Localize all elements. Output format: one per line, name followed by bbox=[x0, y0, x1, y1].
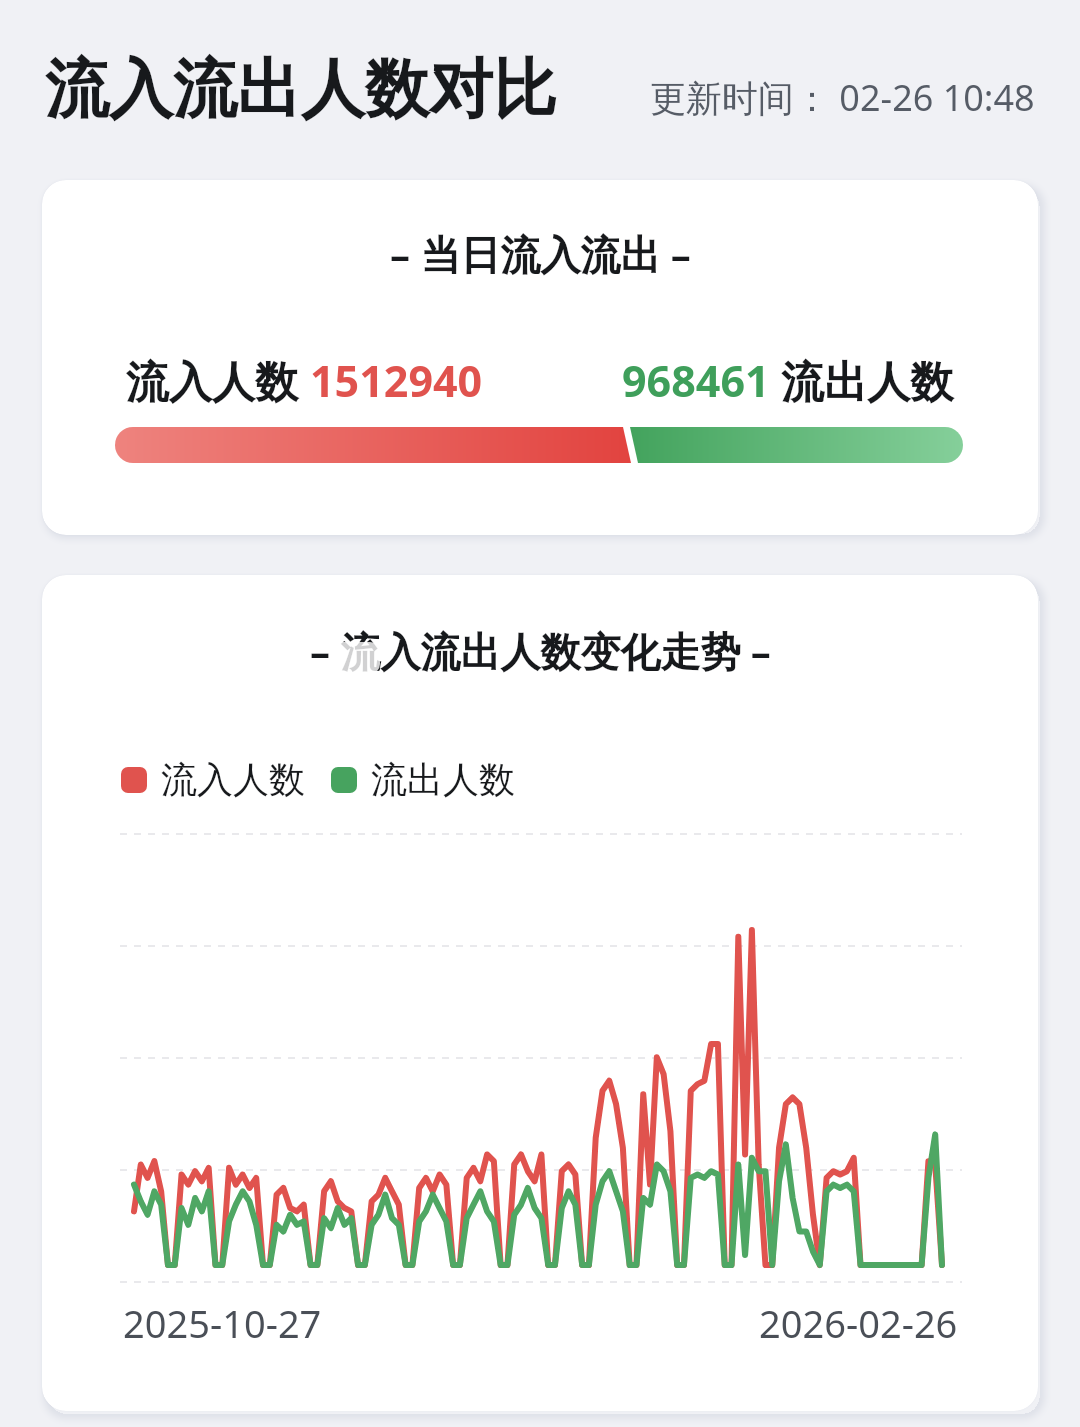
button[interactable]: – 流入流出人数变化走势 – bbox=[42, 575, 1038, 1411]
staticText: 2025-10-27 bbox=[123, 1297, 322, 1349]
staticText: 流入人数 bbox=[126, 351, 310, 410]
button[interactable]: – 当日流入流出 – bbox=[42, 180, 1038, 535]
staticText: 2026-02-26 bbox=[759, 1297, 958, 1349]
staticText: 流入流出人数对比 bbox=[45, 49, 557, 130]
staticText: 流出人数 bbox=[371, 757, 515, 802]
staticText: 更新时间： 02-26 10:48 bbox=[650, 73, 1035, 122]
staticText: 1512940 bbox=[310, 351, 483, 410]
staticText: 流入人数 bbox=[161, 757, 305, 802]
staticText: – 当日流入流出 – bbox=[390, 226, 691, 281]
staticText: 流出人数 bbox=[770, 351, 954, 410]
staticText: 968461 bbox=[622, 351, 770, 410]
staticText: – 流入流出人数变化走势 – bbox=[310, 623, 771, 678]
